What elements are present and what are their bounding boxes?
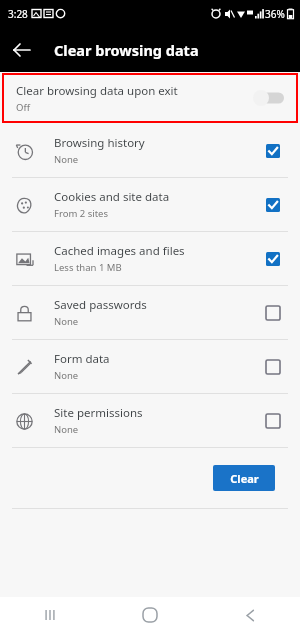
staticText: None [54, 423, 79, 436]
button[interactable]: Cached images and files [0, 232, 300, 285]
staticText: Clear browsing data [54, 40, 199, 60]
button[interactable]: Cookies and site data [0, 178, 300, 231]
button[interactable]: Form data [0, 340, 300, 393]
button[interactable]: Cached images and files checkbox [260, 246, 286, 272]
staticText: Browsing history [54, 135, 145, 151]
staticText: Saved passwords [54, 297, 147, 313]
staticText: None [54, 369, 79, 382]
staticText: Form data [54, 351, 110, 367]
staticText: 3:28 [8, 7, 28, 21]
staticText: Clear [230, 471, 259, 486]
staticText: None [54, 315, 79, 328]
staticText: None [54, 153, 79, 166]
button[interactable]: Saved passwords [0, 286, 300, 339]
staticText: Cookies and site data [54, 189, 170, 205]
staticText: From 2 sites [54, 207, 109, 220]
button[interactable]: Site permissions [0, 394, 300, 447]
staticText: Less than 1 MB [54, 261, 122, 274]
button[interactable]: Back [228, 597, 272, 633]
button[interactable]: Saved passwords checkbox [260, 300, 286, 326]
button[interactable]: Browsing history [0, 124, 300, 177]
staticText: 36% [265, 7, 285, 21]
staticText: Site permissions [54, 405, 143, 421]
button[interactable]: Site permissions checkbox [260, 408, 286, 434]
staticText: Clear browsing data upon exit [16, 83, 178, 99]
button[interactable]: Clear browsing data upon exit [2, 73, 298, 123]
button[interactable]: Browsing history checkbox [260, 138, 286, 164]
button[interactable]: Clear [213, 465, 275, 491]
button[interactable]: Back [6, 34, 38, 66]
button[interactable]: Home [128, 597, 172, 633]
button[interactable]: Recent apps [28, 597, 72, 633]
button[interactable]: Cookies and site data checkbox [260, 192, 286, 218]
staticText: Cached images and files [54, 243, 185, 259]
staticText: Off [16, 101, 30, 114]
button[interactable]: Form data checkbox [260, 354, 286, 380]
